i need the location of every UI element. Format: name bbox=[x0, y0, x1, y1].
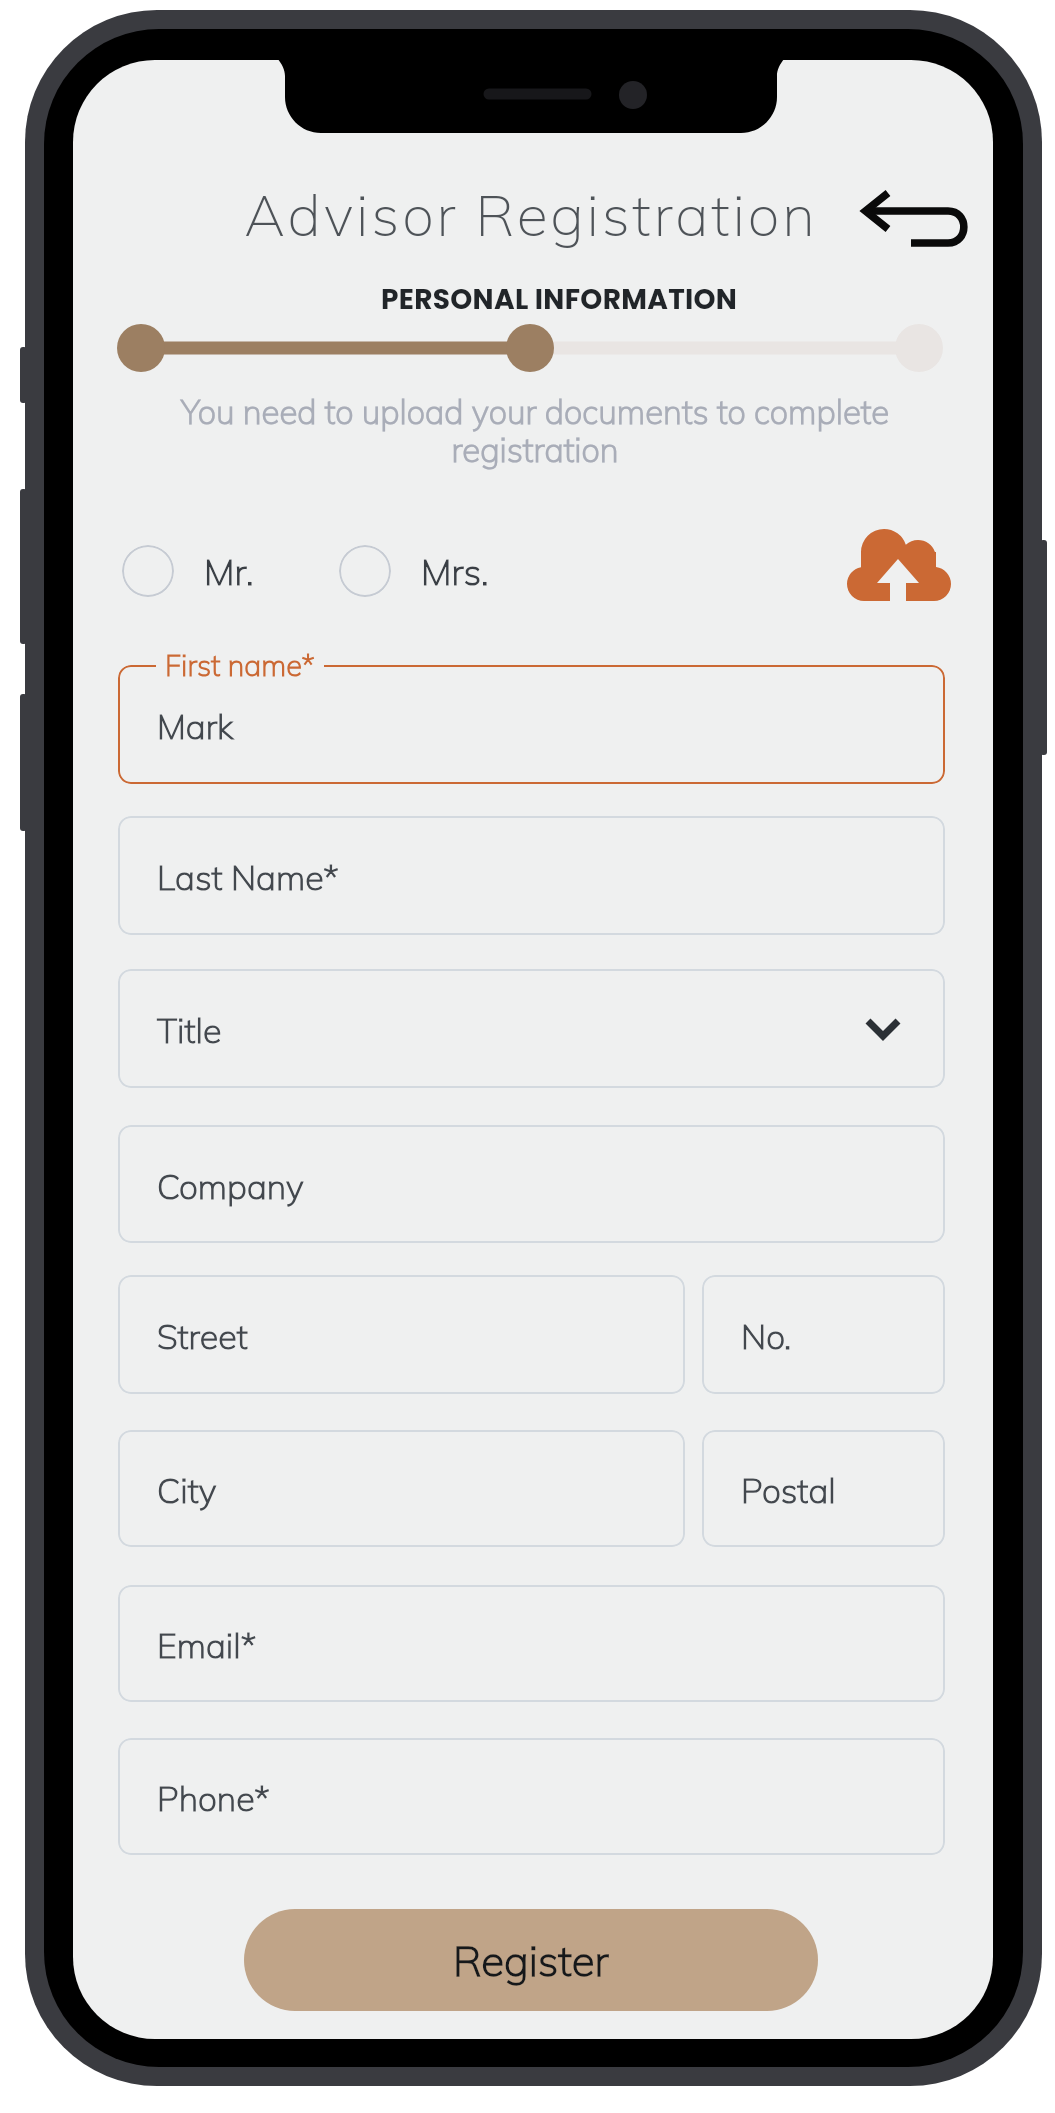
button[interactable]: Back bbox=[858, 183, 978, 253]
staticText: No. bbox=[741, 1315, 792, 1358]
button[interactable]: Company bbox=[118, 1125, 945, 1243]
button[interactable]: Postal bbox=[702, 1430, 945, 1547]
button[interactable]: Email* bbox=[118, 1585, 945, 1702]
staticText: Street bbox=[157, 1315, 248, 1358]
staticText: Postal bbox=[741, 1469, 836, 1512]
staticText: Mrs. bbox=[421, 549, 489, 594]
staticText: City bbox=[157, 1469, 217, 1512]
staticText: Title bbox=[157, 1009, 222, 1052]
button[interactable]: Register bbox=[244, 1909, 818, 2011]
button[interactable]: No. bbox=[702, 1275, 945, 1394]
button[interactable]: Upload documents bbox=[843, 525, 957, 607]
staticText: Email* bbox=[157, 1624, 257, 1667]
button[interactable]: Mr. bbox=[122, 537, 254, 605]
button[interactable]: Title bbox=[118, 969, 945, 1088]
staticText: You need to upload your documents to com… bbox=[155, 391, 915, 470]
button[interactable]: Street bbox=[118, 1275, 685, 1394]
staticText: Advisor Registration bbox=[244, 179, 818, 251]
staticText: Last Name* bbox=[157, 856, 339, 899]
button[interactable]: Last Name* bbox=[118, 816, 945, 935]
button[interactable]: Phone* bbox=[118, 1738, 945, 1855]
staticText: Mark bbox=[157, 705, 234, 748]
button[interactable]: City bbox=[118, 1430, 685, 1547]
staticText: Register bbox=[453, 1934, 609, 1987]
staticText: Company bbox=[157, 1165, 304, 1208]
staticText: Phone* bbox=[157, 1777, 270, 1820]
staticText: First name* bbox=[165, 647, 315, 683]
button[interactable]: Mrs. bbox=[339, 537, 489, 605]
button[interactable]: Mark bbox=[118, 665, 945, 784]
staticText: PERSONAL INFORMATION bbox=[381, 280, 738, 319]
staticText: Mr. bbox=[204, 549, 254, 594]
